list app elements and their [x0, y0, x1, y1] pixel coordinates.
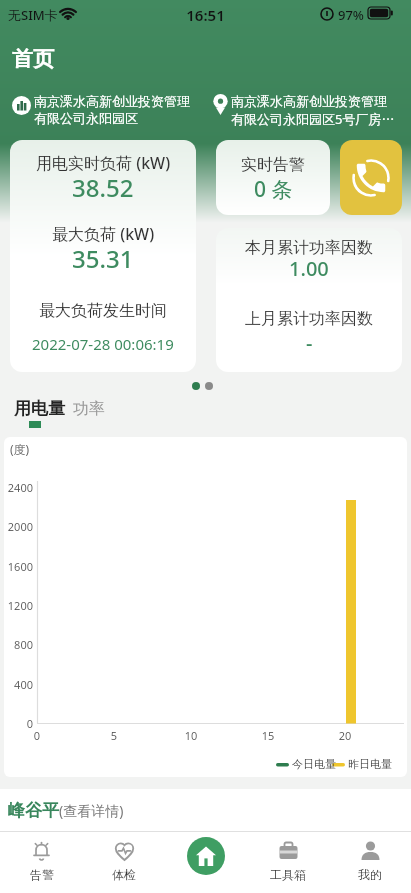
staticText: 南京溧水高新创业投资管理有限公司永阳园区	[34, 93, 196, 127]
staticText: 南京溧水高新创业投资管理有限公司永阳园区5号厂房精密机械加工项目	[231, 93, 397, 128]
staticText: 本月累计功率因数	[245, 238, 373, 258]
staticText: 97%	[338, 6, 364, 24]
button[interactable]: 工具箱	[247, 831, 329, 893]
staticText: 10	[176, 728, 206, 743]
button[interactable]: 实时告警	[216, 140, 330, 215]
staticText: 1600	[0, 559, 33, 574]
staticText: 800	[0, 637, 33, 652]
staticText: 0	[0, 716, 33, 731]
staticText: 2022-07-28 00:06:19	[32, 334, 174, 354]
staticText: 1200	[0, 598, 33, 613]
staticText: 用电实时负荷 (kW)	[36, 152, 171, 174]
staticText: 我的	[358, 867, 382, 882]
staticText: 无SIM卡	[8, 6, 58, 24]
button[interactable]	[165, 831, 247, 893]
staticText: 功率	[73, 399, 105, 419]
button[interactable]: 本月累计功率因数	[216, 228, 402, 372]
button[interactable]: 用电实时负荷 (kW)	[10, 140, 196, 372]
staticText: 38.52	[72, 171, 134, 204]
button[interactable]: 我的	[329, 831, 411, 893]
staticText: 15	[253, 728, 283, 743]
staticText: 昨日电量	[348, 757, 392, 771]
staticText: 16:51	[0, 5, 411, 25]
staticText: 今日电量	[292, 757, 336, 771]
button[interactable]: 告警	[0, 831, 83, 893]
staticText: 首页	[12, 46, 54, 72]
staticText: 2000	[0, 519, 33, 534]
button[interactable]: 功率	[73, 399, 105, 419]
staticText: 最大负荷发生时间	[39, 301, 167, 321]
button[interactable]: 体检	[83, 831, 165, 893]
staticText: 1.00	[289, 255, 329, 282]
staticText: 上月累计功率因数	[245, 309, 373, 329]
staticText: 实时告警	[241, 155, 305, 175]
staticText: -	[306, 329, 313, 356]
staticText: 20	[330, 728, 360, 743]
staticText: 400	[0, 677, 33, 692]
staticText: 0	[22, 728, 52, 743]
staticText: 2400	[0, 480, 33, 495]
staticText: 告警	[30, 867, 54, 882]
staticText: 最大负荷 (kW)	[52, 223, 155, 245]
staticText: 5	[99, 728, 129, 743]
button[interactable]: 峰谷平	[0, 789, 411, 831]
staticText: 35.31	[72, 242, 134, 275]
staticText: 峰谷平	[8, 800, 59, 821]
staticText: (查看详情)	[59, 801, 124, 820]
staticText: 用电量	[14, 398, 65, 419]
staticText: 工具箱	[270, 867, 306, 882]
button[interactable]	[340, 140, 402, 215]
staticText: (度)	[10, 441, 30, 457]
staticText: 体检	[112, 867, 136, 882]
button[interactable]: 用电量	[14, 398, 65, 419]
staticText: 0 条	[254, 175, 293, 204]
